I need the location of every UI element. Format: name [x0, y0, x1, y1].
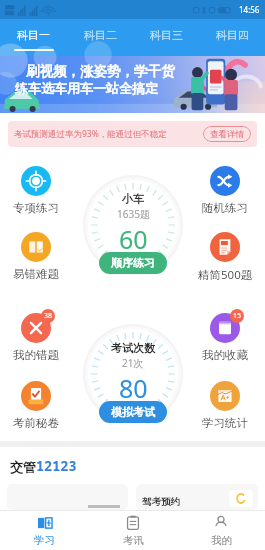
staticText: 精简500题 — [198, 267, 253, 283]
staticText: 科目三 — [150, 28, 183, 42]
staticText: 学习统计 — [202, 416, 248, 430]
button[interactable]: 考讯 — [89, 511, 177, 550]
button[interactable]: 考前秘卷 — [7, 381, 65, 430]
staticText: 交管 — [10, 459, 36, 475]
button[interactable]: 学习 — [0, 511, 89, 550]
staticText: 考讯 — [123, 534, 144, 547]
staticText: 38 — [44, 311, 53, 321]
button[interactable]: 驾考预约 — [136, 484, 258, 510]
staticText: 顺序练习 — [111, 256, 155, 270]
staticText: 12123 — [36, 457, 77, 475]
button[interactable]: 查看详情 — [203, 126, 251, 142]
button[interactable]: 科目四 — [199, 19, 265, 56]
staticText: 我的 — [211, 534, 232, 547]
button[interactable]: 精简500题 — [196, 232, 254, 283]
button[interactable]: 我的 — [177, 511, 265, 550]
staticText: 驾考预约 — [142, 496, 180, 508]
staticText: 易错难题 — [13, 267, 59, 281]
staticText: 60 — [119, 222, 148, 256]
button[interactable]: 科目三 — [133, 19, 199, 56]
staticText: 科目二 — [84, 28, 117, 42]
staticText: 15 — [233, 311, 242, 321]
staticText: 小车 — [122, 192, 144, 206]
staticText: 我的错题 — [13, 348, 59, 362]
staticText: 1635题 — [117, 207, 150, 221]
staticText: 专项练习 — [13, 201, 59, 215]
staticText: 科目四 — [216, 28, 249, 42]
staticText: 考试预测通过率为93%，能通过但不稳定 — [14, 128, 167, 140]
button[interactable]: 模拟考试 — [99, 401, 167, 423]
staticText: 科目一 — [17, 28, 50, 42]
button[interactable]: 科目一 — [0, 19, 67, 56]
staticText: 学习 — [34, 534, 55, 547]
staticText: 我的收藏 — [202, 348, 248, 362]
button[interactable]: 随机练习 — [196, 166, 254, 215]
staticText: 考试次数 — [111, 341, 155, 355]
button[interactable]: 15 — [196, 313, 254, 362]
staticText: 刷视频，涨姿势，学干货 — [26, 63, 175, 80]
button[interactable]: 38 — [7, 313, 65, 362]
button[interactable]: 专项练习 — [7, 166, 65, 215]
staticText: 21次 — [122, 356, 144, 370]
staticText: 练车选车用车一站全搞定 — [15, 80, 158, 96]
staticText: 考前秘卷 — [13, 416, 59, 430]
staticText: 模拟考试 — [111, 405, 155, 419]
button[interactable] — [7, 484, 128, 510]
button[interactable]: 顺序练习 — [99, 252, 167, 274]
button[interactable]: 学习统计 — [196, 381, 254, 430]
button[interactable]: 考试预测通过率为93%，能通过但不稳定 — [8, 121, 257, 147]
staticText: 14:56 — [239, 4, 260, 15]
staticText: 80 — [119, 371, 148, 405]
button[interactable]: 科目二 — [67, 19, 133, 56]
staticText: 随机练习 — [202, 201, 248, 215]
button[interactable]: 易错难题 — [7, 232, 65, 281]
staticText: 查看详情 — [210, 129, 244, 140]
